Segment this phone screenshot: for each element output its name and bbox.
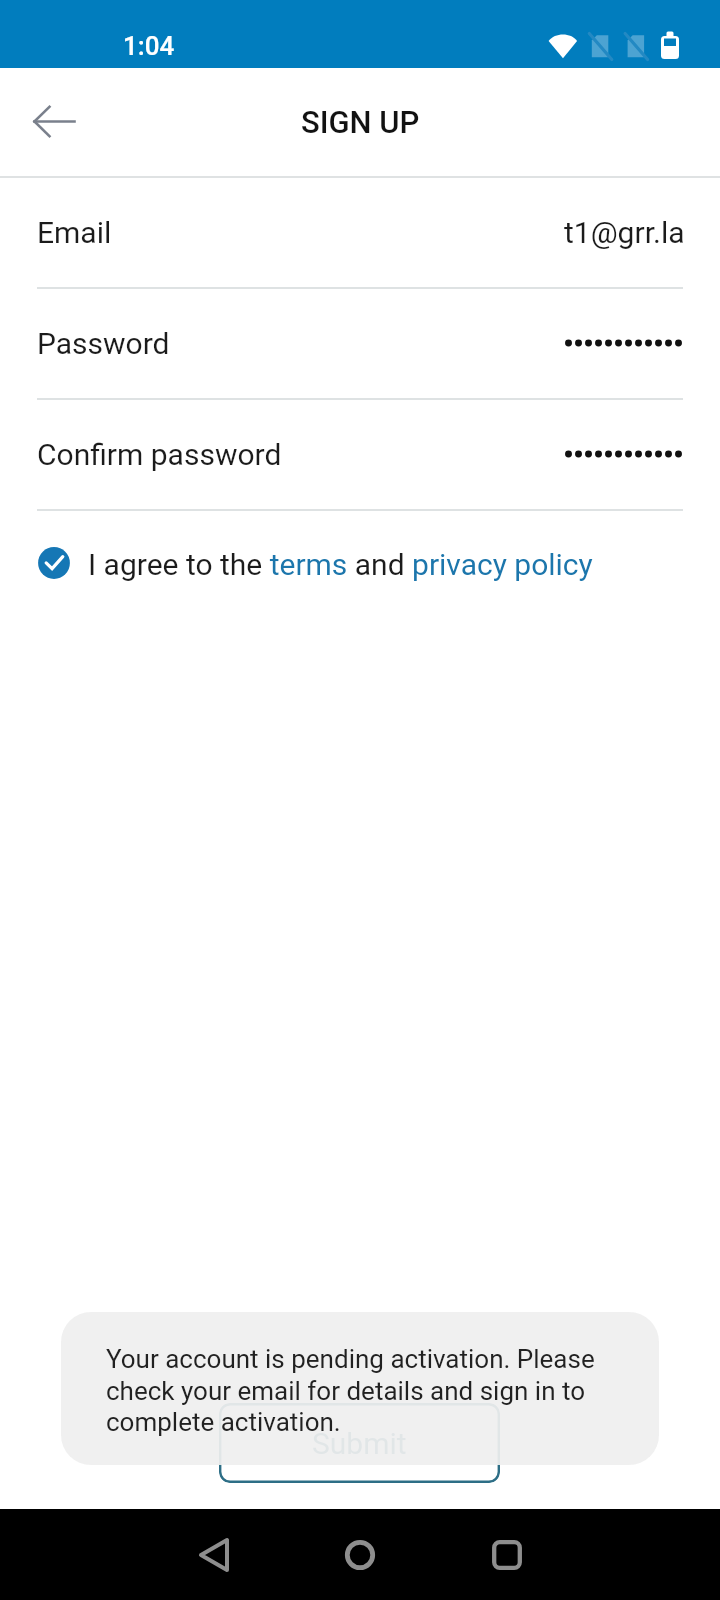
button[interactable]: Recent apps: [467, 1515, 547, 1595]
staticText: I agree to the terms and privacy policy: [88, 547, 593, 582]
button[interactable]: Confirm password: [0, 400, 720, 511]
button[interactable]: I agree to the terms and privacy policy: [38, 547, 593, 582]
staticText: Confirm password: [37, 437, 282, 472]
staticText: t1@grr.la: [564, 215, 685, 250]
button[interactable]: Back: [16, 86, 88, 158]
button[interactable]: Back: [174, 1515, 254, 1595]
button[interactable]: Password: [0, 289, 720, 400]
staticText: 1:04: [123, 31, 175, 61]
button[interactable]: Submit: [219, 1403, 500, 1483]
staticText: Email: [37, 215, 112, 250]
staticText: Submit: [312, 1426, 407, 1461]
staticText: Your account is pending activation. Plea…: [106, 1344, 606, 1437]
button[interactable]: Email: [0, 178, 720, 289]
staticText: Password: [37, 326, 170, 361]
button[interactable]: Home: [320, 1515, 400, 1595]
staticText: SIGN UP: [301, 104, 420, 140]
